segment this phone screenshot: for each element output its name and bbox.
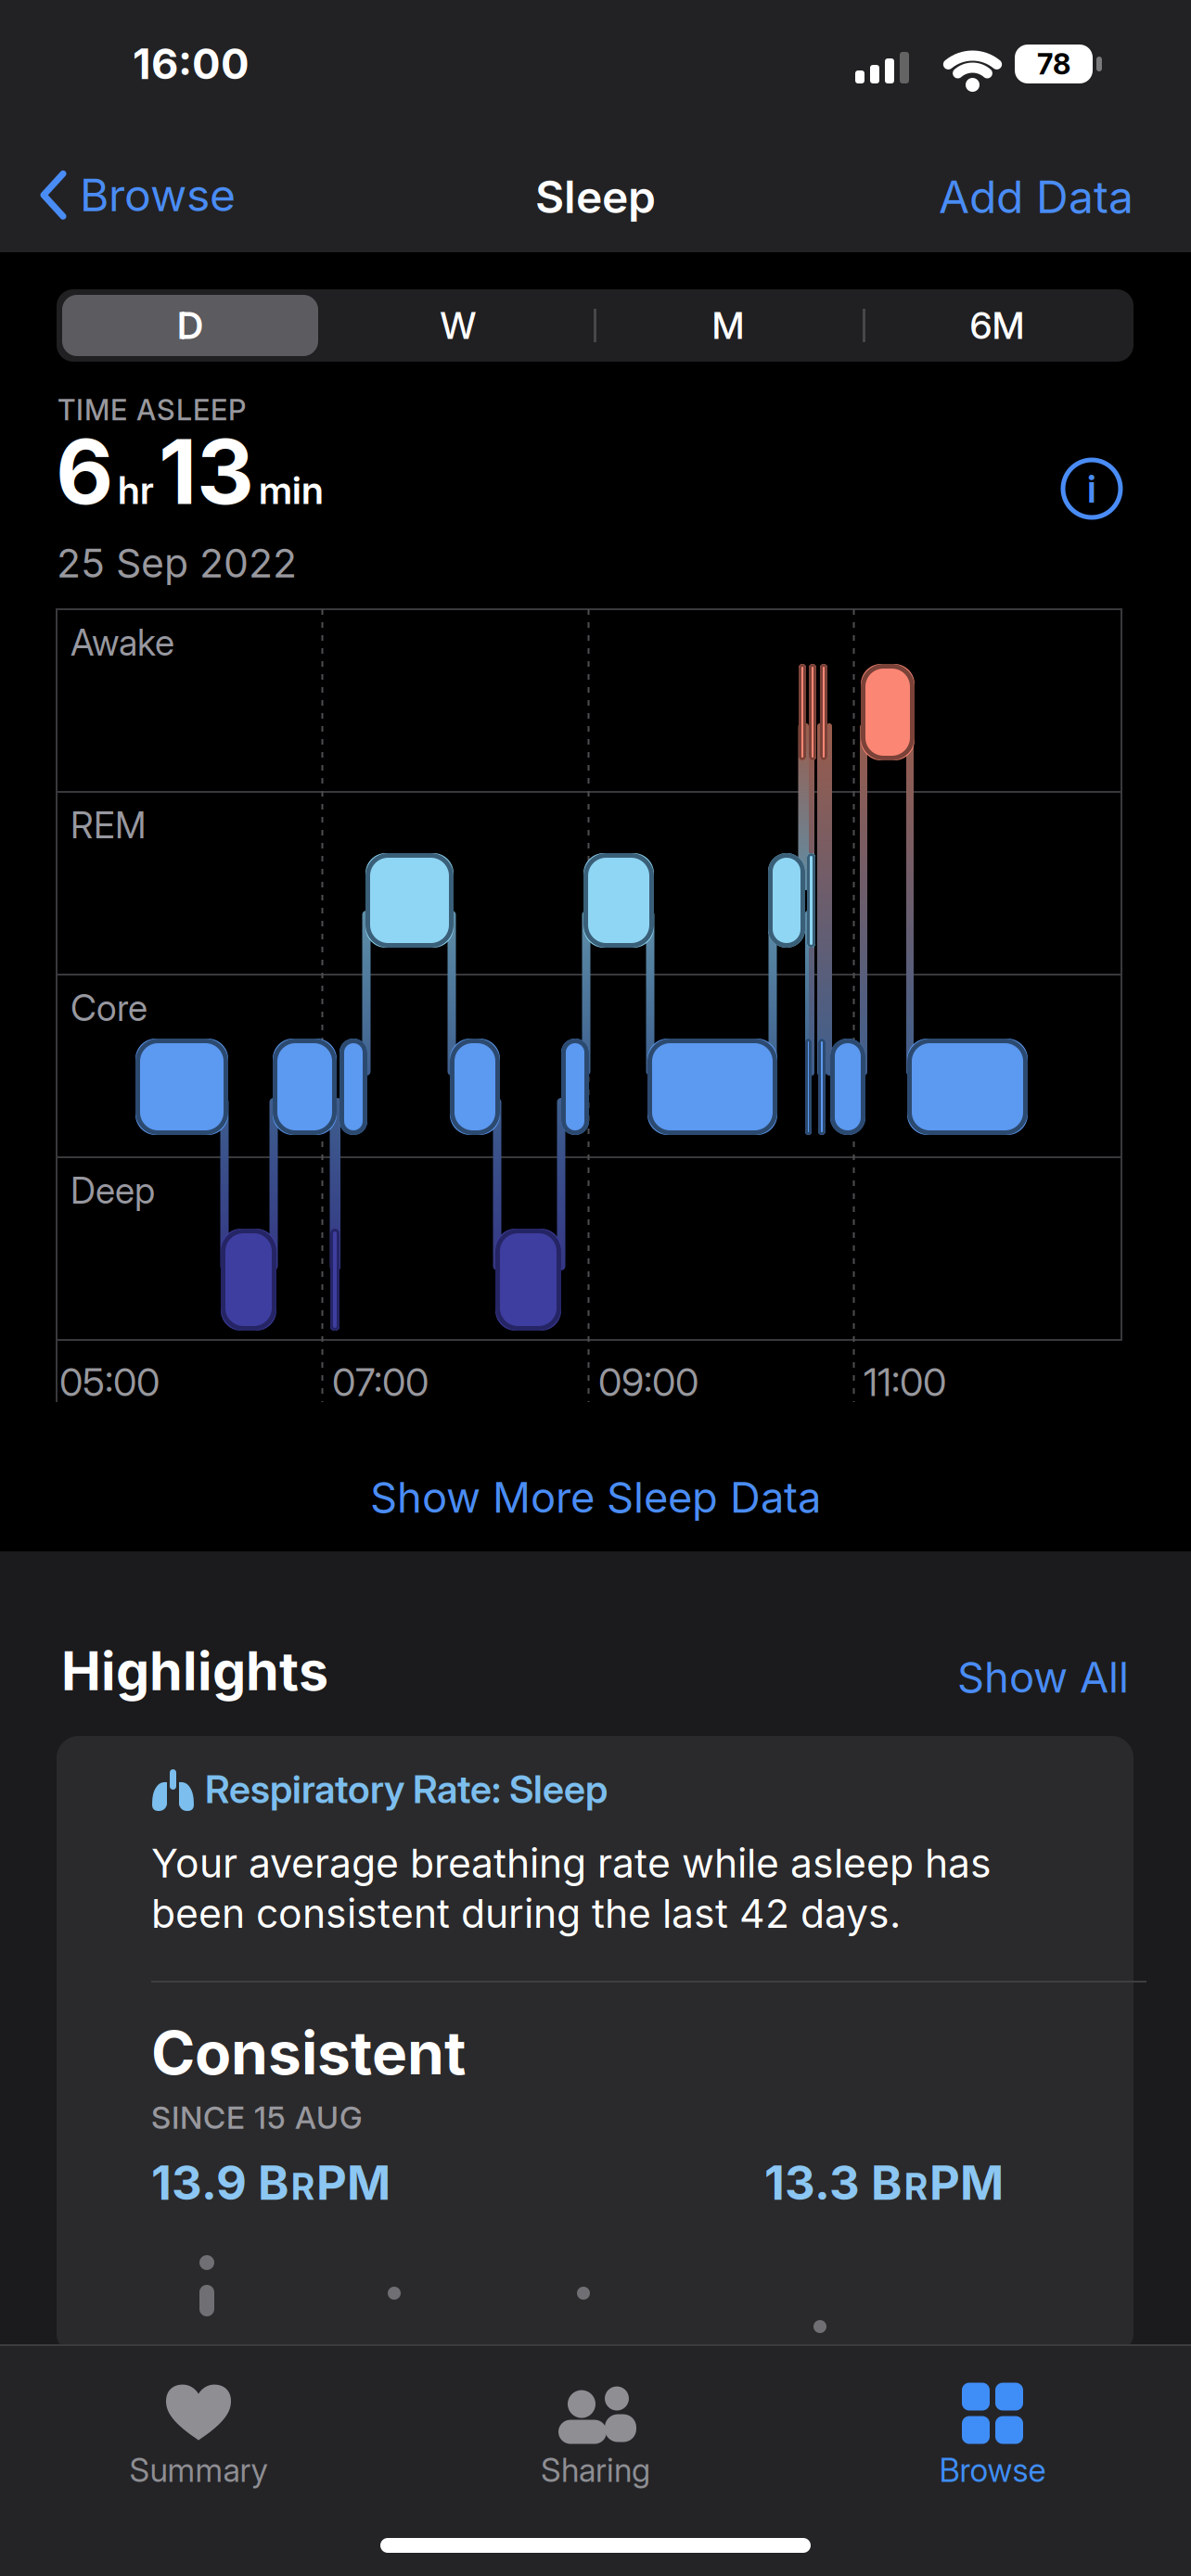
button[interactable]: W [328,289,588,362]
staticText: 13.9 B [151,2155,289,2210]
staticText: R [291,2166,314,2208]
staticText: Show All [957,1652,1129,1702]
staticText: 16:00 [133,39,250,89]
staticText: 13 [159,419,254,524]
staticText: i [1087,466,1096,511]
staticText: Highlights [61,1639,328,1702]
staticText: 25 Sep 2022 [57,540,297,586]
staticText: 05:00 [59,1359,160,1405]
button[interactable]: Respiratory Rate: Sleep [57,1736,1133,2355]
staticText: Core [70,987,147,1029]
staticText: min [259,467,324,513]
button[interactable]: Browse [794,2366,1191,2506]
staticText: Your average breathing rate while asleep… [151,1840,992,1937]
staticText: R [904,2166,928,2208]
staticText: hr [118,467,154,513]
button[interactable]: Add Data [939,171,1133,223]
staticText: Add Data [939,171,1133,223]
staticText: 6M [970,304,1025,347]
staticText: REM [70,804,146,846]
staticText: M [712,304,744,347]
staticText: Show More Sleep Data [370,1473,821,1522]
staticText: Respiratory Rate: Sleep [205,1766,608,1812]
staticText: 07:00 [332,1359,429,1405]
button[interactable]: Show More Sleep Data [370,1473,821,1522]
staticText: D [177,304,203,347]
staticText: PM [316,2155,391,2210]
button[interactable]: Show All [957,1652,1129,1702]
staticText: TIME ASLEEP [58,393,246,427]
staticText: W [440,304,476,347]
staticText: 6 [56,419,113,524]
button[interactable]: Browse [41,169,236,221]
staticText: Consistent [151,2018,466,2088]
staticText: 09:00 [598,1359,698,1405]
staticText: Sharing [541,2451,650,2489]
button[interactable]: About Time Asleep [1063,460,1121,517]
button[interactable]: Summary [0,2366,397,2506]
staticText: Summary [129,2451,268,2489]
staticText: Awake [70,621,174,664]
staticText: Browse [80,169,236,221]
staticText: 78 [1037,47,1070,81]
staticText: Deep [70,1169,155,1212]
staticText: 13.3 B [764,2155,903,2210]
staticText: Sleep [535,171,656,223]
button[interactable]: Sharing [397,2366,794,2506]
staticText: PM [929,2155,1004,2210]
button[interactable]: D [62,295,318,356]
staticText: SINCE 15 AUG [151,2099,363,2136]
button[interactable]: 6M [867,289,1127,362]
button[interactable]: M [598,289,858,362]
staticText: Browse [939,2451,1046,2489]
staticText: 11:00 [864,1359,946,1405]
